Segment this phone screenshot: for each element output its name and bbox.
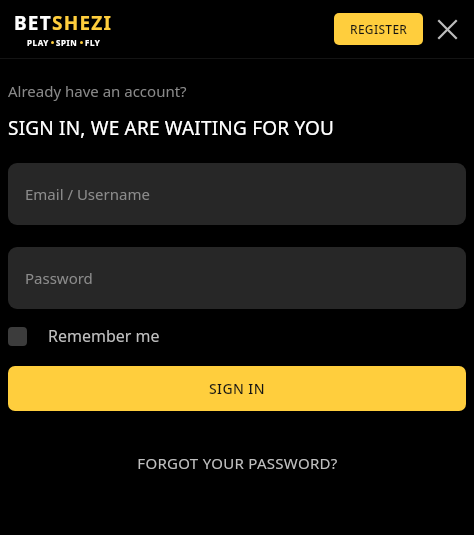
staticText: PLAY (27, 37, 49, 48)
staticText: SHEZI (52, 10, 113, 36)
staticText: Email / Username (25, 184, 150, 204)
button[interactable]: FORGOT YOUR PASSWORD? (127, 447, 348, 479)
staticText: Already have an account? (8, 81, 187, 101)
button[interactable]: Email / Username (8, 163, 466, 225)
staticText: Password (25, 268, 93, 288)
button[interactable]: Close (427, 9, 467, 49)
staticText: SIGN IN, WE ARE WAITING FOR YOU (8, 115, 335, 141)
button[interactable]: Password (8, 247, 466, 309)
staticText: SIGN IN (209, 379, 265, 398)
button[interactable]: Remember me (8, 325, 160, 347)
staticText: SPIN (56, 37, 78, 48)
staticText: REGISTER (350, 21, 408, 37)
staticText: Remember me (48, 325, 160, 347)
button[interactable]: SIGN IN (8, 366, 466, 411)
staticText: FORGOT YOUR PASSWORD? (137, 453, 338, 473)
button[interactable]: REGISTER (334, 13, 423, 45)
staticText: BET (14, 10, 52, 36)
staticText: FLY (85, 37, 101, 48)
button[interactable]: BET (14, 10, 113, 48)
